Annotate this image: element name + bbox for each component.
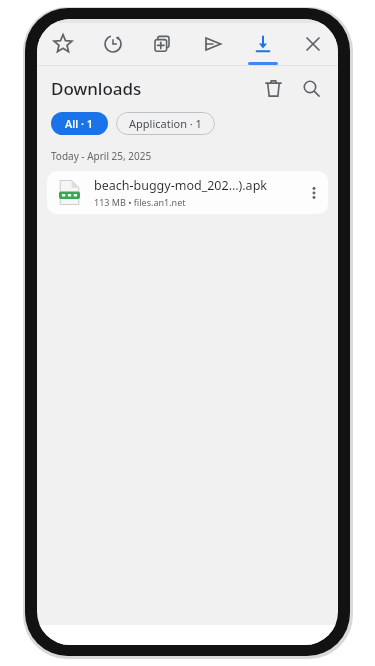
staticText: Downloads bbox=[51, 77, 142, 100]
button[interactable]: Share bbox=[188, 23, 238, 65]
staticText: Today - April 25, 2025 bbox=[51, 149, 152, 163]
staticText: 113 MB • files.an1.net bbox=[94, 196, 186, 208]
button[interactable]: Bookmarks bbox=[37, 23, 88, 65]
button[interactable]: Search bbox=[294, 71, 328, 105]
button[interactable]: History bbox=[88, 23, 138, 65]
button[interactable]: Close bbox=[288, 23, 338, 65]
button[interactable]: All · 1 bbox=[51, 112, 108, 135]
button[interactable]: beach-buggy-mod_202…).apk bbox=[47, 171, 328, 214]
button[interactable]: Downloads bbox=[238, 23, 288, 65]
staticText: Application · 1 bbox=[129, 116, 202, 131]
button[interactable]: Delete bbox=[256, 71, 290, 105]
staticText: All · 1 bbox=[65, 116, 94, 131]
button[interactable]: Application · 1 bbox=[116, 112, 215, 135]
button[interactable]: More options bbox=[300, 171, 328, 214]
staticText: beach-buggy-mod_202…).apk bbox=[94, 177, 267, 194]
button[interactable]: New tab bbox=[138, 23, 188, 65]
